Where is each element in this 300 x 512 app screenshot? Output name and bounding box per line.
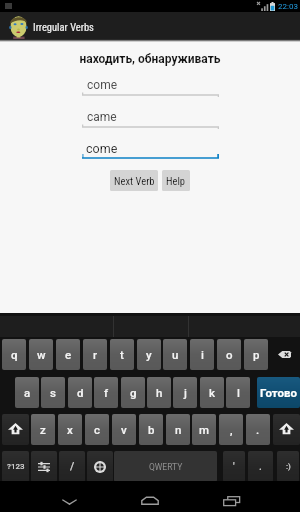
button[interactable]: v xyxy=(112,414,136,445)
button[interactable]: m xyxy=(192,414,216,445)
staticText: 22:03 xyxy=(278,2,298,11)
button[interactable]: u xyxy=(163,339,187,370)
staticText: Next Verb xyxy=(114,175,155,187)
staticText: . xyxy=(256,423,260,436)
button[interactable]: d xyxy=(68,377,92,408)
staticText: c xyxy=(94,423,101,436)
button[interactable]: g xyxy=(121,377,145,408)
staticText: b xyxy=(148,423,155,436)
staticText: / xyxy=(70,460,75,473)
other: Backspace xyxy=(278,351,291,358)
button[interactable]: :) xyxy=(277,451,299,482)
button[interactable]: y xyxy=(137,339,161,370)
button[interactable]: Keyboard settings xyxy=(31,451,57,482)
other: Shift xyxy=(8,423,23,436)
staticText: находить, обнаруживать xyxy=(0,52,300,66)
staticText: QWERTY xyxy=(149,462,183,472)
staticText: ' xyxy=(233,461,235,473)
staticText: d xyxy=(77,386,84,399)
button[interactable]: Change language xyxy=(87,451,113,482)
button[interactable]: / xyxy=(59,451,85,482)
button[interactable]: f xyxy=(94,377,118,408)
staticText: m xyxy=(199,423,210,436)
button[interactable]: k xyxy=(200,377,224,408)
staticText: Готово xyxy=(260,386,297,399)
staticText: n xyxy=(175,423,182,436)
staticText: u xyxy=(172,348,179,361)
button[interactable]: q xyxy=(2,339,26,370)
button[interactable]: Backspace xyxy=(269,339,300,370)
staticText: e xyxy=(65,348,72,361)
staticText: come xyxy=(87,78,118,92)
button[interactable]: t xyxy=(110,339,134,370)
button[interactable]: s xyxy=(41,377,65,408)
button[interactable]: came xyxy=(82,107,219,129)
button[interactable]: Shift xyxy=(273,414,300,445)
staticText: i xyxy=(201,348,204,361)
button[interactable]: x xyxy=(58,414,82,445)
button[interactable]: l xyxy=(226,377,250,408)
button[interactable]: come xyxy=(82,75,219,97)
staticText: p xyxy=(253,348,260,361)
staticText: x xyxy=(67,423,73,436)
button[interactable]: a xyxy=(15,377,39,408)
staticText: z xyxy=(40,423,46,436)
button[interactable]: Готово xyxy=(257,377,300,408)
staticText: s xyxy=(50,386,56,399)
staticText: Help xyxy=(166,175,186,187)
staticText: came xyxy=(87,110,117,124)
button[interactable]: . xyxy=(246,414,270,445)
staticText: ?123 xyxy=(7,462,25,471)
button[interactable]: j xyxy=(173,377,197,408)
button[interactable]: Hide keyboard xyxy=(44,481,94,512)
staticText: . xyxy=(259,461,262,473)
button[interactable]: Help xyxy=(162,170,190,191)
button[interactable]: r xyxy=(83,339,107,370)
button[interactable]: z xyxy=(31,414,55,445)
button[interactable]: ' xyxy=(223,451,245,482)
button[interactable]: Next Verb xyxy=(110,170,158,191)
staticText: come xyxy=(86,141,118,156)
button[interactable]: p xyxy=(244,339,268,370)
button[interactable]: Home xyxy=(125,481,175,512)
other: Keyboard settings xyxy=(38,461,50,473)
button[interactable]: h xyxy=(147,377,171,408)
button[interactable]: b xyxy=(139,414,163,445)
staticText: g xyxy=(130,386,137,399)
button[interactable]: Recent apps xyxy=(206,481,256,512)
staticText: , xyxy=(230,423,233,436)
staticText: l xyxy=(237,386,240,399)
button[interactable]: n xyxy=(166,414,190,445)
staticText: j xyxy=(184,386,187,399)
staticText: v xyxy=(121,423,127,436)
staticText: y xyxy=(146,348,152,361)
button[interactable]: QWERTY xyxy=(114,451,217,482)
staticText: w xyxy=(37,348,46,361)
staticText: Irregular Verbs xyxy=(33,21,94,33)
staticText: :) xyxy=(286,462,291,471)
button[interactable]: Shift xyxy=(2,414,29,445)
button[interactable]: ?123 xyxy=(2,451,29,482)
button[interactable]: w xyxy=(29,339,53,370)
button[interactable]: , xyxy=(219,414,243,445)
button[interactable]: c xyxy=(85,414,109,445)
staticText: h xyxy=(156,386,163,399)
staticText: q xyxy=(11,348,18,361)
button[interactable]: i xyxy=(190,339,214,370)
other: Change language xyxy=(94,461,106,473)
staticText: t xyxy=(120,348,124,361)
staticText: f xyxy=(104,386,109,399)
staticText: r xyxy=(93,348,98,361)
staticText: a xyxy=(24,386,31,399)
other: Shift xyxy=(279,423,294,436)
button[interactable]: o xyxy=(217,339,241,370)
staticText: k xyxy=(209,386,215,399)
button[interactable]: . xyxy=(248,451,273,482)
button[interactable]: e xyxy=(56,339,80,370)
button[interactable]: come xyxy=(82,139,219,161)
staticText: o xyxy=(226,348,233,361)
